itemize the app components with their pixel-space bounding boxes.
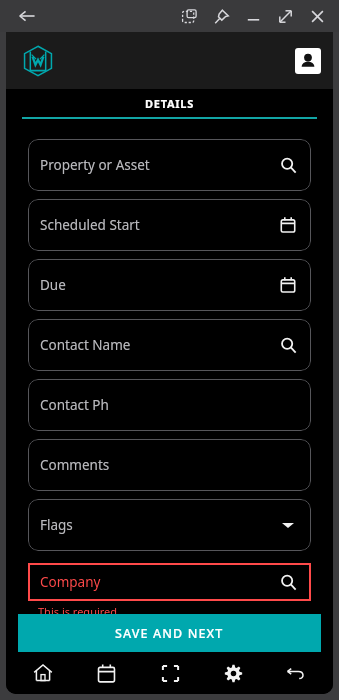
button[interactable]: Due [28,259,311,311]
button[interactable]: Company [28,563,311,601]
button[interactable]: Back [270,652,322,694]
staticText: Due [40,276,66,294]
button[interactable]: Comments [28,439,311,491]
button[interactable]: Maximize [273,4,297,28]
button[interactable]: Contact Ph [28,379,311,431]
button[interactable]: Contact Name [28,319,311,371]
staticText: Company [40,573,101,591]
button[interactable]: DETAILS [6,89,333,117]
button[interactable]: Property or Asset [28,139,311,191]
button[interactable]: Pin window [209,4,233,28]
button[interactable]: Settings [207,652,259,694]
staticText: This is required [38,604,118,614]
button[interactable]: Calendar [80,652,132,694]
button[interactable]: Snap window [177,4,201,28]
button[interactable]: Scheduled Start [28,199,311,251]
button[interactable]: Profile [295,48,321,74]
button[interactable]: Back [12,1,42,31]
button[interactable]: App logo [18,41,58,81]
button[interactable]: Flags [28,499,311,551]
staticText: Comments [40,456,110,474]
button[interactable]: SAVE AND NEXT [18,614,321,652]
button[interactable]: Close [305,4,329,28]
staticText: Flags [40,516,73,534]
button[interactable]: Minimize [241,4,265,28]
staticText: Property or Asset [40,156,150,174]
staticText: Scheduled Start [40,216,140,234]
staticText: Contact Name [40,336,131,354]
staticText: DETAILS [145,96,194,111]
button[interactable]: Home [17,652,69,694]
staticText: SAVE AND NEXT [115,625,224,642]
staticText: Contact Ph [40,396,109,414]
button[interactable]: Scan [144,652,196,694]
